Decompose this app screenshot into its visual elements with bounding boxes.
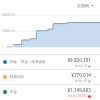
staticText: 前日比 ±0 <box>74 64 87 68</box>
other: 詳細 <box>93 90 97 94</box>
other: 情報 <box>88 65 91 68</box>
staticText: i <box>89 95 90 98</box>
button[interactable]: 預金・現金・暗号資産 <box>0 55 100 69</box>
staticText: i <box>89 80 90 83</box>
staticText: i <box>89 65 90 68</box>
staticText: ¥770,014 <box>71 72 91 78</box>
staticText: ¥9,820,151 <box>67 57 91 63</box>
button[interactable]: 全期間 <box>74 2 97 9</box>
staticText: 前日比 -¥1,561 <box>68 94 87 98</box>
staticText: 1000万円 <box>2 29 15 33</box>
button[interactable]: 投資信託 <box>0 70 100 84</box>
staticText: 預金・現金・暗号資産 <box>10 60 46 65</box>
staticText: 2000万円 <box>2 13 15 17</box>
staticText: ¥1,149,883 <box>67 87 91 93</box>
other: 詳細 <box>93 75 97 79</box>
staticText: 前日比 ±0 <box>74 79 87 83</box>
staticText: 年金 <box>10 90 18 95</box>
staticText: 投資信託 <box>10 75 25 80</box>
other: 情報 <box>88 80 91 83</box>
staticText: 0円 <box>7 45 12 49</box>
other: 詳細 <box>93 60 97 64</box>
button[interactable]: 年金 <box>0 85 100 99</box>
other: 情報 <box>88 95 91 98</box>
staticText: 全期間 <box>77 3 89 8</box>
